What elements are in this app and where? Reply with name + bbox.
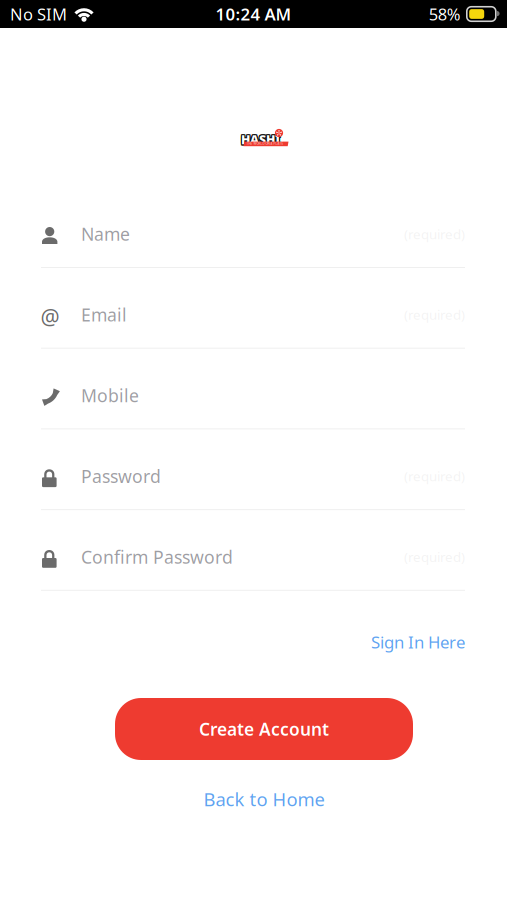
staticText: (required) <box>404 306 465 324</box>
staticText: THE WORLD ON A PLATE <box>246 142 283 146</box>
staticText: Back to Home <box>203 786 324 812</box>
staticText: HASHI <box>240 131 279 148</box>
staticText: HASHI <box>242 130 281 147</box>
staticText: Confirm Password <box>81 545 233 569</box>
staticText: Sign In Here <box>371 631 465 653</box>
staticText: No SIM <box>10 3 67 25</box>
staticText: HASHI <box>241 132 280 149</box>
staticText: HASHI <box>241 131 280 148</box>
staticText: HASHI <box>240 132 279 149</box>
staticText: HASHI <box>240 130 279 147</box>
staticText: Password <box>81 464 161 488</box>
staticText: HASHI <box>242 132 281 149</box>
staticText: 10:24 AM <box>215 3 291 25</box>
button[interactable]: Create Account <box>115 698 413 760</box>
staticText: Email <box>81 303 127 327</box>
staticText: 58% <box>429 3 461 25</box>
staticText: HASHI <box>242 131 281 148</box>
staticText: Name <box>81 222 130 246</box>
staticText: (required) <box>404 548 465 566</box>
button[interactable]: Sign In Here <box>41 622 465 662</box>
staticText: Create Account <box>199 717 329 741</box>
staticText: HASHI <box>241 130 280 147</box>
staticText: (required) <box>404 225 465 243</box>
staticText: @ <box>40 302 59 331</box>
staticText: Mobile <box>81 383 139 407</box>
staticText: (required) <box>404 467 465 485</box>
button[interactable]: Back to Home <box>115 779 413 819</box>
